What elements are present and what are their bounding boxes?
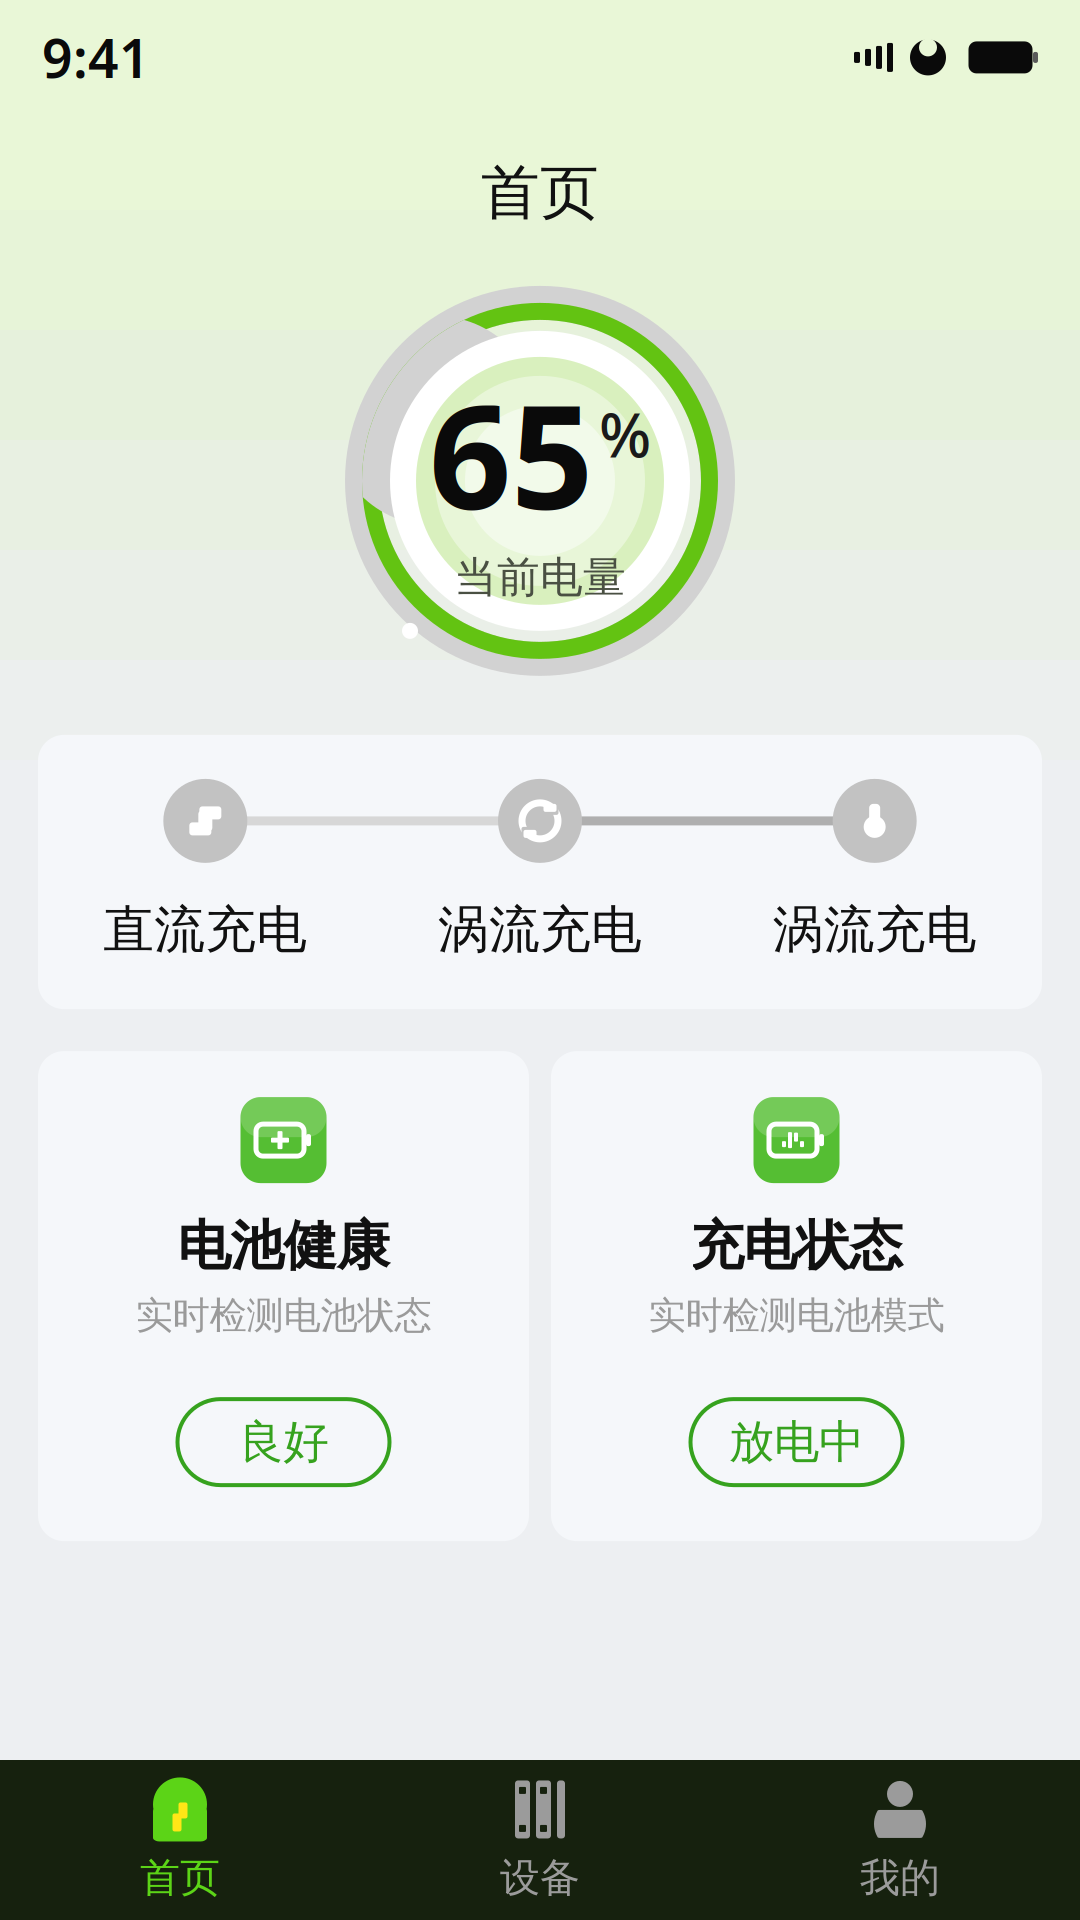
staticText: 直流充电: [103, 899, 307, 961]
staticText: 我的: [860, 1853, 940, 1902]
button[interactable]: 设备: [360, 1760, 720, 1920]
staticText: 设备: [500, 1853, 580, 1902]
staticText: %: [599, 393, 651, 474]
staticText: 实时检测电池模式: [648, 1293, 944, 1338]
button[interactable]: 充电状态: [551, 1051, 1042, 1541]
staticText: 实时检测电池状态: [135, 1293, 431, 1338]
staticText: 涡流充电: [438, 899, 642, 961]
button[interactable]: 电池健康: [38, 1051, 529, 1541]
staticText: 良好: [238, 1414, 328, 1470]
staticText: 首页: [140, 1853, 220, 1902]
button[interactable]: 首页: [0, 1760, 360, 1920]
staticText: 当前电量: [454, 551, 626, 604]
staticText: 9:41: [42, 22, 150, 93]
staticText: 首页: [481, 157, 599, 229]
staticText: 涡流充电: [773, 899, 977, 961]
button[interactable]: 我的: [720, 1760, 1080, 1920]
staticText: 放电中: [729, 1414, 864, 1470]
staticText: 充电状态: [690, 1213, 902, 1279]
staticText: 电池健康: [177, 1213, 389, 1279]
staticText: 65: [429, 358, 593, 549]
